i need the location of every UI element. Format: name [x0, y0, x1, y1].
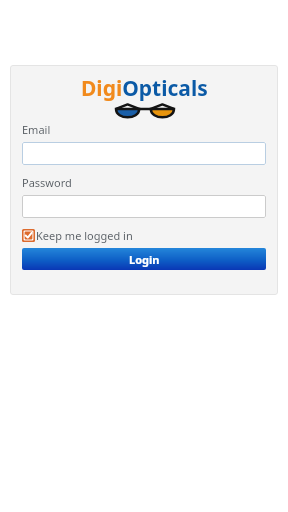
staticText: Login: [129, 252, 160, 267]
button[interactable]: Login: [22, 248, 266, 270]
button[interactable]: Keep me logged in: [22, 228, 133, 243]
staticText: Password: [22, 175, 72, 190]
button[interactable]: [22, 195, 266, 218]
staticText: DigiOpticals: [81, 74, 208, 103]
staticText: Email: [22, 122, 51, 137]
staticText: Keep me logged in: [36, 228, 133, 243]
button[interactable]: [22, 142, 266, 165]
